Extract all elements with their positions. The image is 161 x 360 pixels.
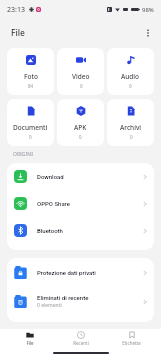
staticText: Audio (121, 72, 140, 81)
button[interactable]: Download (7, 163, 154, 190)
button[interactable]: Foto (7, 48, 54, 95)
staticText: 0 (130, 134, 133, 140)
staticText: File (11, 27, 25, 39)
button[interactable]: Etichette (106, 329, 157, 348)
staticText: 98% (142, 6, 154, 14)
staticText: 0 (80, 83, 83, 89)
staticText: Etichette (122, 340, 141, 346)
staticText: 84 (28, 83, 34, 89)
staticText: 0 (29, 134, 32, 140)
button[interactable]: Eliminati di recente (7, 286, 154, 317)
button[interactable]: Protezione dati privati (7, 259, 154, 286)
button[interactable]: OPPO Share (7, 190, 154, 217)
staticText: APK (74, 123, 87, 132)
staticText: Recenti (73, 340, 89, 346)
staticText: Protezione dati privati (37, 269, 96, 276)
button[interactable]: Archivi (107, 99, 154, 146)
staticText: Download (37, 173, 64, 180)
button[interactable]: Audio (107, 48, 154, 95)
staticText: Video (72, 72, 90, 81)
staticText: File (26, 340, 34, 346)
button[interactable]: APK (57, 99, 104, 146)
button[interactable]: File (4, 329, 55, 348)
staticText: Archivi (120, 123, 142, 132)
staticText: Eliminati di recente (37, 294, 89, 301)
staticText: 0 (129, 83, 132, 89)
staticText: Bluetooth (37, 227, 63, 234)
staticText: ORIGINI (13, 151, 33, 158)
button[interactable]: More options (138, 23, 158, 43)
button[interactable]: Video (57, 48, 104, 95)
staticText: 23:13 (7, 5, 25, 15)
staticText: 0 (79, 134, 82, 140)
button[interactable]: Recenti (55, 329, 106, 348)
staticText: Documenti (13, 123, 48, 132)
staticText: OPPO Share (37, 200, 70, 207)
button[interactable]: Bluetooth (7, 217, 154, 244)
button[interactable]: Documenti (7, 99, 54, 146)
staticText: 0 elementi (37, 302, 62, 309)
staticText: Foto (24, 72, 38, 81)
